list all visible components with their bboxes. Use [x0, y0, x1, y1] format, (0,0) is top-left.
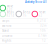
button[interactable]: Sleep [16, 11, 32, 17]
staticText: Stand [2, 29, 9, 32]
staticText: 32m [40, 24, 46, 27]
staticText: Heart [39, 10, 46, 14]
button[interactable]: Stand [0, 28, 48, 33]
staticText: Distance [2, 34, 13, 37]
button[interactable]: Activity [25, 0, 34, 4]
button[interactable]: Exercise [0, 23, 48, 28]
staticText: Flights [2, 39, 11, 42]
staticText: 10h [40, 29, 46, 32]
staticText: 8,214 [37, 19, 46, 22]
staticText: 12 [42, 39, 46, 42]
staticText: 7h [23, 14, 27, 17]
button[interactable]: Flights [0, 38, 48, 43]
button[interactable]: Heart [32, 11, 48, 17]
staticText: Show All [35, 0, 47, 4]
staticText: 420 [7, 8, 13, 11]
button[interactable]: Show All [35, 0, 47, 4]
staticText: Move [7, 4, 14, 8]
staticText: Sleep [23, 10, 31, 14]
staticText: Steps [7, 10, 14, 14]
button[interactable]: Move [0, 5, 16, 11]
staticText: Exercise [2, 24, 12, 27]
staticText: Steps [2, 19, 9, 22]
button[interactable]: Distance [0, 33, 48, 38]
button[interactable]: Steps [0, 11, 16, 17]
staticText: 8214 [7, 14, 15, 17]
staticText: 62 [39, 14, 43, 17]
button[interactable]: Steps [0, 18, 48, 23]
staticText: 4.1km [38, 34, 46, 37]
staticText: Activity [25, 0, 34, 4]
